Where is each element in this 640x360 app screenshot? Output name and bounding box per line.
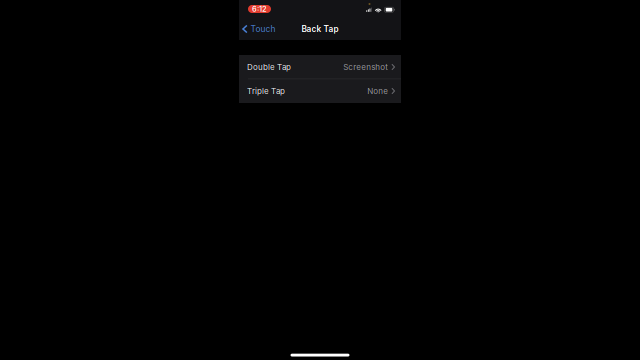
button[interactable]: Triple Tap: [239, 79, 401, 103]
staticText: None: [367, 86, 388, 96]
button[interactable]: Touch: [239, 21, 279, 37]
staticText: Touch: [250, 24, 275, 34]
staticText: Triple Tap: [247, 86, 285, 96]
staticText: Screenshot: [343, 62, 388, 72]
staticText: Double Tap: [247, 62, 291, 72]
staticText: Back Tap: [301, 24, 338, 34]
staticText: 6:12: [252, 5, 267, 13]
button[interactable]: Double Tap: [239, 55, 401, 79]
